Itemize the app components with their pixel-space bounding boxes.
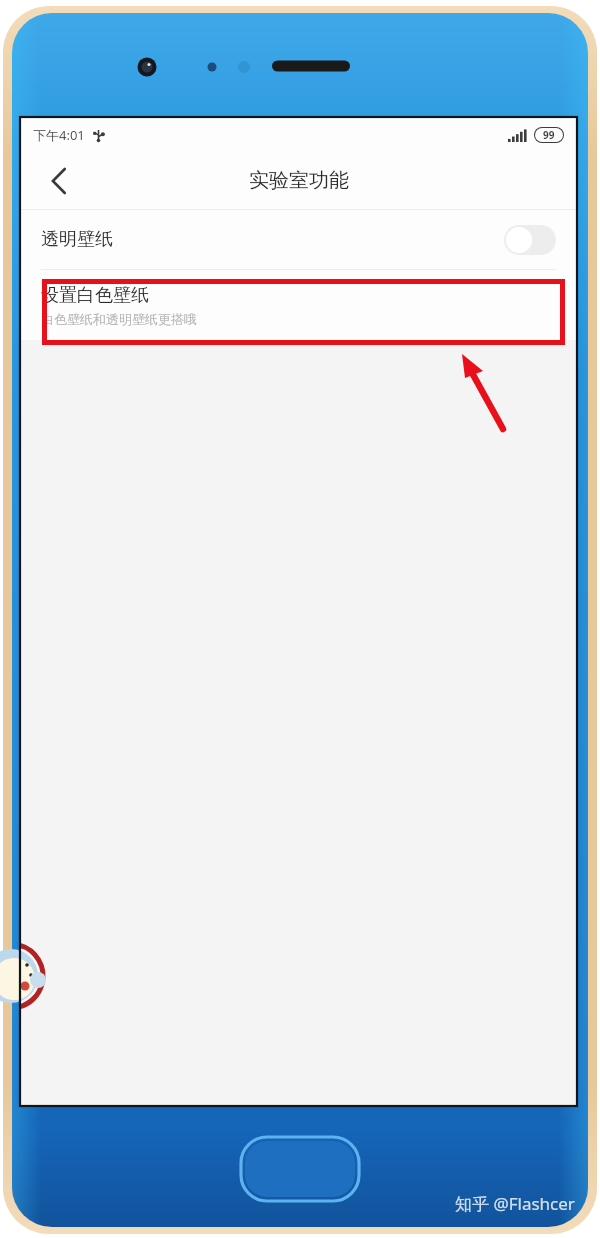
staticText: 下午4:01 [33,126,85,144]
staticText: 知乎 @Flashcer [455,1192,575,1215]
staticText: 实验室功能 [249,168,349,193]
staticText: 99 [543,128,555,142]
button[interactable]: 透明壁纸 [21,210,576,269]
staticText: 白色壁纸和透明壁纸更搭哦 [41,311,197,327]
button[interactable]: 设置白色壁纸 [21,270,576,340]
button[interactable]: Back [37,159,81,203]
button[interactable]: Toggle 透明壁纸 [504,225,556,255]
staticText: 透明壁纸 [41,228,113,251]
staticText: 设置白色壁纸 [41,284,149,307]
